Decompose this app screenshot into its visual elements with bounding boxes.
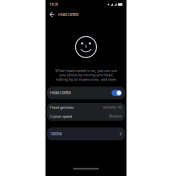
staticText: Medium <box>109 114 122 118</box>
button[interactable]: Head gestures <box>47 103 125 112</box>
staticText: 10:31 <box>49 2 58 7</box>
button[interactable]: Head control <box>47 87 125 99</box>
staticText: Head gestures <box>50 105 74 110</box>
button[interactable]: Cursor speed <box>47 112 125 121</box>
staticText: Cursor speed <box>50 114 72 119</box>
button[interactable]: Back <box>48 9 55 20</box>
staticText: Tutorial <box>50 132 62 136</box>
staticText: When head control is on, you can use you… <box>55 68 117 82</box>
staticText: Head control <box>57 12 78 17</box>
button[interactable]: Tutorial <box>47 127 125 140</box>
staticText: Head control <box>50 91 71 95</box>
staticText: Gestures (6) <box>103 105 122 109</box>
